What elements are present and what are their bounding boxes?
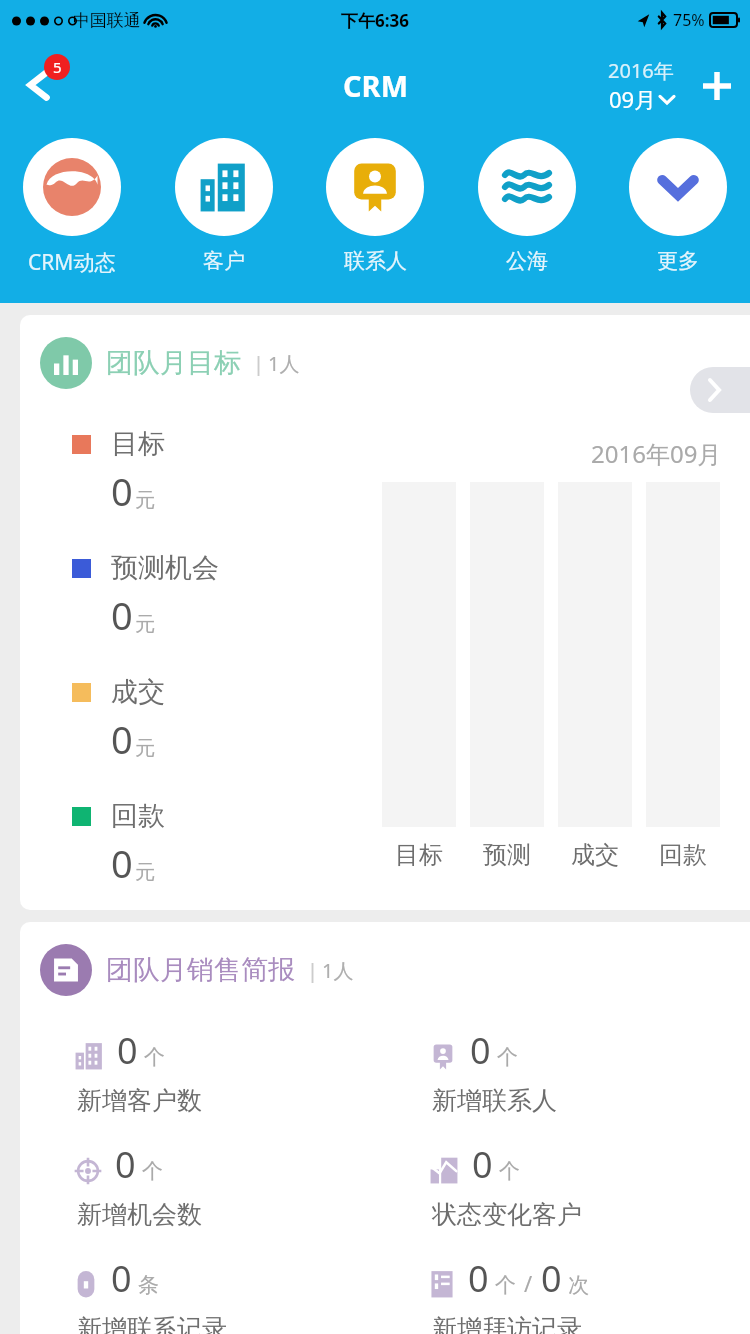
button[interactable]: 客户 bbox=[166, 138, 282, 274]
staticText: 新增联系记录 bbox=[77, 1313, 227, 1334]
staticText: 更多 bbox=[657, 248, 699, 274]
button[interactable]: Next bbox=[690, 367, 750, 413]
staticText: 75% bbox=[673, 9, 705, 31]
staticText: 预测 bbox=[483, 840, 531, 870]
staticText: CRM bbox=[343, 66, 408, 105]
staticText: 团队月销售简报 bbox=[106, 953, 295, 987]
staticText: 0 bbox=[111, 465, 133, 517]
staticText: 目标 bbox=[111, 427, 165, 461]
staticText: 次 bbox=[568, 1272, 589, 1298]
button[interactable]: Add bbox=[692, 61, 742, 111]
button[interactable]: 2016年 bbox=[604, 57, 678, 114]
staticText: 0 bbox=[117, 1026, 138, 1075]
staticText: 成交 bbox=[111, 675, 165, 709]
staticText: 下午6:36 bbox=[341, 9, 409, 32]
button[interactable]: 团队月销售简报 bbox=[20, 922, 750, 1334]
staticText: 客户 bbox=[203, 248, 245, 274]
staticText: 0 bbox=[470, 1026, 491, 1075]
staticText: 0 bbox=[472, 1140, 493, 1189]
staticText: 团队月目标 bbox=[106, 346, 241, 380]
staticText: 0 bbox=[111, 1254, 132, 1303]
button[interactable]: 0 bbox=[75, 1254, 227, 1334]
staticText: 个 bbox=[497, 1044, 518, 1070]
staticText: 公海 bbox=[506, 248, 548, 274]
staticText: 条 bbox=[138, 1272, 159, 1298]
staticText: 回款 bbox=[659, 840, 707, 870]
staticText: 0 bbox=[468, 1254, 489, 1303]
button[interactable]: 团队月目标 bbox=[20, 315, 750, 910]
staticText: 1人 bbox=[268, 350, 300, 377]
staticText: 个 bbox=[144, 1044, 165, 1070]
staticText: 新增客户数 bbox=[77, 1085, 202, 1116]
staticText: / bbox=[524, 1268, 533, 1298]
staticText: 新增联系人 bbox=[432, 1085, 557, 1116]
staticText: | bbox=[307, 957, 319, 984]
button[interactable]: 0 bbox=[430, 1140, 582, 1230]
staticText: 新增拜访记录 bbox=[432, 1313, 582, 1334]
staticText: 个 bbox=[142, 1158, 163, 1184]
button[interactable]: 0 bbox=[430, 1254, 589, 1334]
staticText: 0 bbox=[111, 589, 133, 641]
button[interactable]: 更多 bbox=[620, 138, 736, 274]
staticText: 个 bbox=[495, 1272, 516, 1298]
staticText: 中国联通 bbox=[73, 10, 141, 31]
staticText: 2016年09月 bbox=[591, 437, 722, 470]
staticText: 个 bbox=[499, 1158, 520, 1184]
button[interactable]: 0 bbox=[430, 1026, 557, 1116]
staticText: 预测机会 bbox=[111, 551, 219, 585]
button[interactable]: 公海 bbox=[469, 138, 585, 274]
staticText: 元 bbox=[135, 612, 155, 637]
staticText: 成交 bbox=[571, 840, 619, 870]
staticText: 元 bbox=[135, 736, 155, 761]
staticText: 1人 bbox=[322, 957, 354, 984]
button[interactable]: 0 bbox=[75, 1026, 202, 1116]
button[interactable]: Back bbox=[8, 53, 72, 117]
staticText: 0 bbox=[115, 1140, 136, 1189]
staticText: 0 bbox=[111, 837, 133, 889]
staticText: CRM动态 bbox=[28, 248, 116, 277]
staticText: 元 bbox=[135, 860, 155, 885]
staticText: 目标 bbox=[395, 840, 443, 870]
staticText: 5 bbox=[53, 57, 62, 77]
staticText: 联系人 bbox=[344, 248, 407, 274]
staticText: 新增机会数 bbox=[77, 1199, 202, 1230]
staticText: 2016年 bbox=[608, 57, 674, 84]
staticText: 0 bbox=[541, 1254, 562, 1303]
staticText: 09月 bbox=[609, 84, 657, 114]
staticText: 0 bbox=[111, 713, 133, 765]
staticText: | bbox=[253, 350, 265, 377]
staticText: 状态变化客户 bbox=[432, 1199, 582, 1230]
button[interactable]: CRM动态 bbox=[14, 138, 130, 277]
staticText: 元 bbox=[135, 488, 155, 513]
button[interactable]: 0 bbox=[75, 1140, 202, 1230]
staticText: 回款 bbox=[111, 799, 165, 833]
button[interactable]: 联系人 bbox=[317, 138, 433, 274]
